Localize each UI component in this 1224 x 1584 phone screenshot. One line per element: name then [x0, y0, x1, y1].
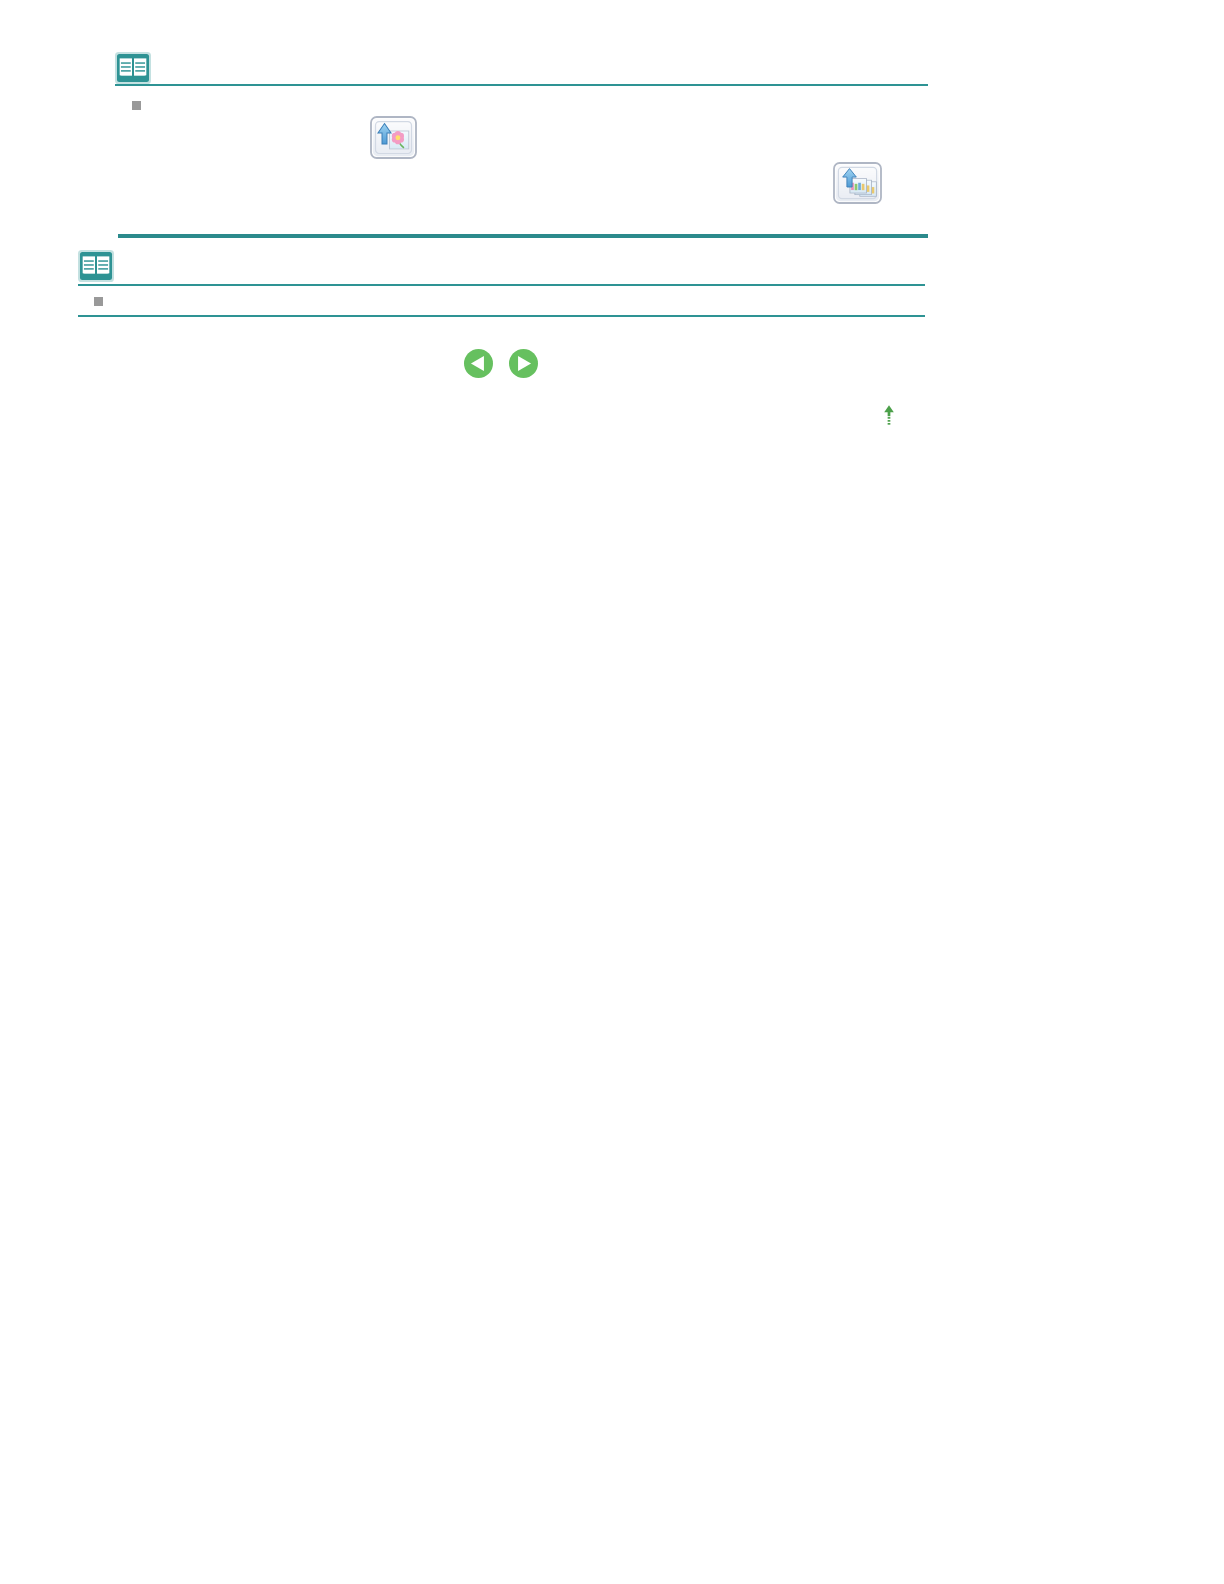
button[interactable]: Upload multiple photos: [834, 163, 881, 203]
button[interactable]: Reference guide: [78, 250, 114, 282]
button[interactable]: Previous page: [464, 349, 493, 378]
button[interactable]: Page top: [881, 403, 897, 425]
button[interactable]: Next page: [509, 349, 538, 378]
button[interactable]: Reference guide: [115, 52, 151, 84]
button[interactable]: Upload photo: [371, 117, 416, 158]
